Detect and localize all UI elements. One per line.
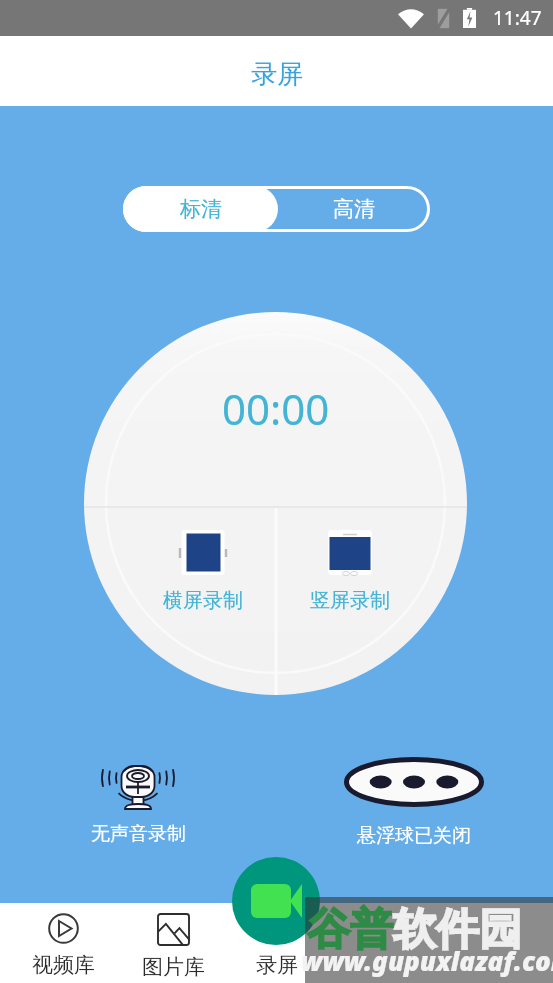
staticText: 录屏 [256,952,298,978]
button[interactable]: 无声音录制 [78,763,198,846]
staticText: 谷普 [307,903,393,957]
button[interactable]: 录屏 [222,908,332,983]
button[interactable]: 图片库 [118,908,228,983]
button[interactable]: 横屏录制 [143,530,263,613]
button[interactable]: 视频库 [8,908,118,983]
staticText: 11:47 [493,5,542,31]
staticText: 悬浮球已关闭 [357,824,471,848]
staticText: 图片库 [142,954,205,980]
staticText: 00:00 [222,380,330,437]
staticText: 录屏 [251,58,303,91]
staticText: 无声音录制 [91,822,186,846]
staticText: 软件园 [393,903,522,957]
button[interactable]: 悬浮球已关闭 [329,757,499,848]
button[interactable]: 开始录屏 [232,857,320,945]
button[interactable]: 高清 [278,186,430,232]
staticText: 竖屏录制 [310,588,390,613]
staticText: 视频库 [32,952,95,978]
staticText: www.gupuxlazaf.com [301,943,553,978]
button[interactable]: 竖屏录制 [290,530,410,613]
staticText: 高清 [333,196,375,222]
button[interactable]: 标清 [123,186,278,232]
other: 无声音录制 [96,763,180,809]
staticText: 横屏录制 [163,588,243,613]
staticText: 标清 [180,196,222,222]
other: 悬浮球已关闭 [344,757,484,807]
